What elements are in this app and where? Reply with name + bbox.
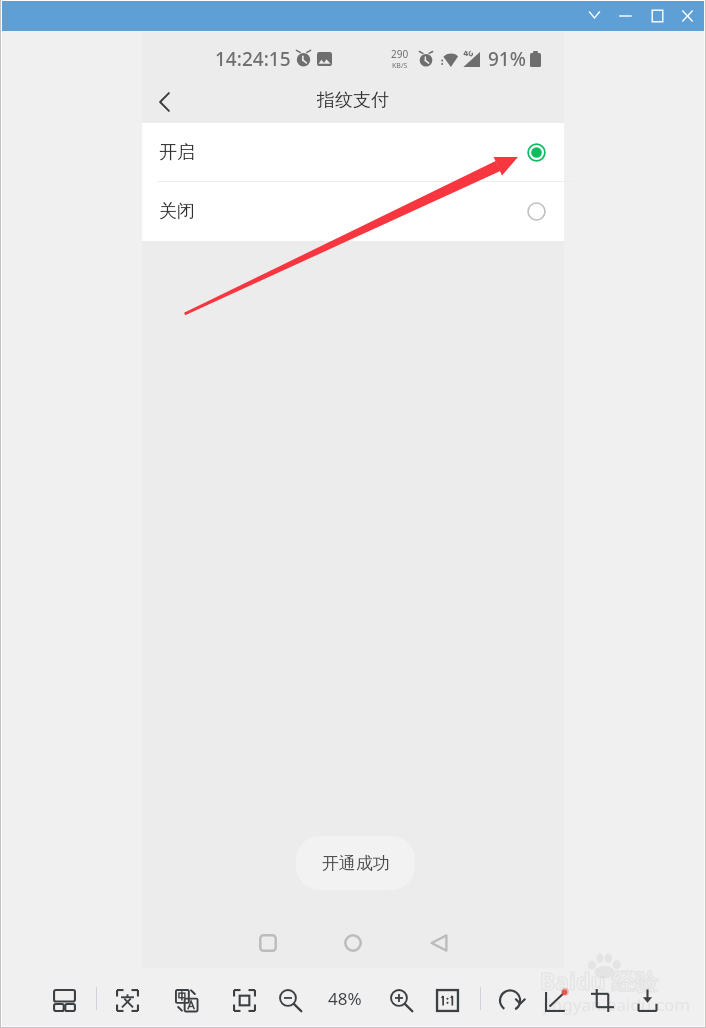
button[interactable]: Crop: [586, 984, 618, 1016]
staticText: 290: [391, 47, 409, 61]
button[interactable]: Fit to window: [228, 984, 260, 1016]
button[interactable]: Back: [143, 80, 186, 123]
button[interactable]: Actual size: [431, 984, 463, 1016]
staticText: 91%: [488, 46, 526, 72]
button[interactable]: Back: [419, 923, 459, 963]
button[interactable]: Home: [333, 923, 373, 963]
button[interactable]: Zoom out: [274, 984, 306, 1016]
staticText: 开启: [159, 141, 195, 164]
button[interactable]: Maximize: [642, 1, 673, 31]
button[interactable]: Minimize to tray: [579, 1, 610, 31]
button[interactable]: Rotate: [495, 984, 527, 1016]
button[interactable]: 关闭: [142, 182, 564, 240]
button[interactable]: Thumbnails: [48, 984, 80, 1016]
button[interactable]: Recents: [248, 923, 288, 963]
button[interactable]: Text recognition: [111, 984, 143, 1016]
button[interactable]: 开启: [142, 123, 564, 181]
staticText: 指纹支付: [317, 89, 389, 112]
staticText: KB/S: [392, 61, 408, 71]
staticText: jingyan.baidu.com: [543, 993, 691, 1016]
button[interactable]: Edit: [540, 984, 572, 1016]
button[interactable]: Close: [672, 1, 703, 31]
staticText: 14:24:15: [215, 46, 291, 72]
button[interactable]: Zoom in: [385, 984, 417, 1016]
button[interactable]: Minimize: [610, 1, 641, 31]
staticText: 开通成功: [322, 853, 390, 874]
staticText: 关闭: [159, 200, 195, 223]
button[interactable]: Save: [631, 984, 663, 1016]
staticText: 48%: [328, 987, 362, 1010]
button[interactable]: Translate: [170, 984, 202, 1016]
staticText: Baidu 经验: [540, 965, 658, 996]
